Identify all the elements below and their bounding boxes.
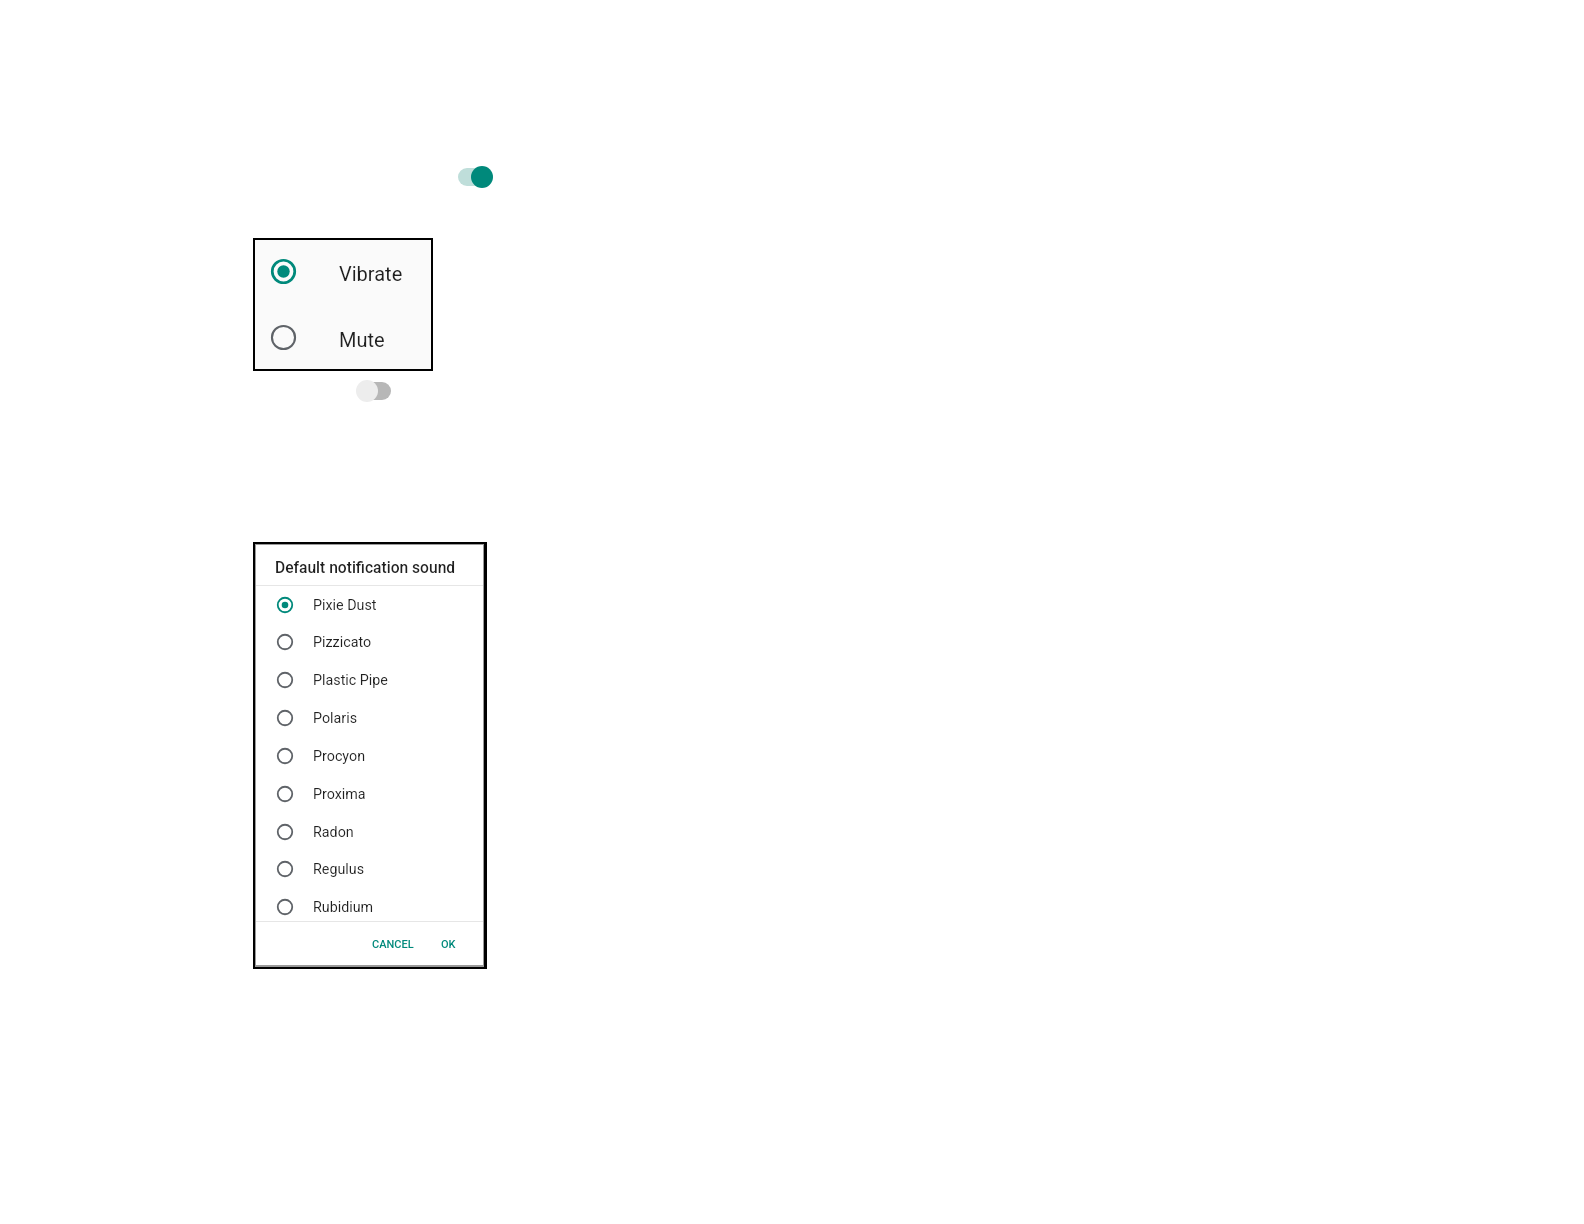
staticText: Plastic Pipe <box>313 672 388 689</box>
button[interactable]: Procyon <box>256 739 483 777</box>
staticText: Regulus <box>313 861 365 878</box>
button[interactable]: OK <box>436 930 460 958</box>
staticText: Pixie Dust <box>313 597 377 614</box>
button[interactable]: Pixie Dust <box>256 588 483 626</box>
button[interactable]: Switch off <box>356 380 391 402</box>
staticText: Default notification sound <box>275 559 456 577</box>
staticText: Procyon <box>313 748 366 765</box>
staticText: Mute <box>339 328 385 351</box>
staticText: Vibrate <box>339 262 403 285</box>
staticText: Proxima <box>313 786 366 803</box>
button[interactable]: Plastic Pipe <box>256 663 483 701</box>
staticText: CANCEL <box>372 938 414 951</box>
button[interactable]: Pizzicato <box>256 625 483 663</box>
staticText: Rubidium <box>313 899 374 916</box>
button[interactable]: Polaris <box>256 701 483 739</box>
staticText: Polaris <box>313 710 358 727</box>
button[interactable]: Vibrate <box>255 240 431 304</box>
button[interactable]: Proxima <box>256 777 483 815</box>
button[interactable]: Radon <box>256 815 483 853</box>
button[interactable]: Mute <box>255 304 431 368</box>
button[interactable]: CANCEL <box>364 930 422 958</box>
staticText: Radon <box>313 824 354 841</box>
button[interactable]: Rubidium <box>256 890 483 928</box>
staticText: OK <box>441 938 456 951</box>
staticText: Pizzicato <box>313 634 372 651</box>
button[interactable]: Switch on <box>458 166 493 188</box>
button[interactable]: Regulus <box>256 852 483 890</box>
